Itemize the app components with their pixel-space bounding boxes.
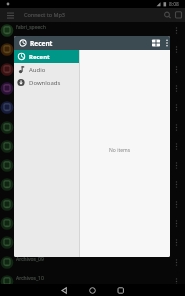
staticText: Archivos_v2	[16, 63, 44, 70]
button[interactable]: Antivirus_x	[0, 79, 185, 98]
button[interactable]: Recent	[14, 36, 170, 50]
staticText: Archivos_10	[16, 275, 44, 282]
button[interactable]: Archivos_05	[0, 175, 185, 194]
staticText: Antivirus_x	[16, 82, 42, 89]
button[interactable]: Downloads	[14, 76, 79, 89]
button[interactable]: Archivos_10	[0, 272, 185, 291]
button[interactable]: Audio	[14, 63, 79, 76]
button[interactable]: Archivos_08	[0, 233, 185, 252]
staticText: Downloads	[29, 79, 61, 87]
button[interactable]: Archivos_06	[0, 195, 185, 214]
staticText: Animated_03	[16, 43, 47, 50]
staticText: No items	[109, 147, 131, 154]
button[interactable]: Archivos_09	[0, 253, 185, 272]
button[interactable]: Connect to Mp3	[0, 8, 185, 22]
staticText: fabri_speech	[16, 24, 46, 31]
button[interactable]: Archivos_07	[0, 214, 185, 233]
staticText: Recent	[30, 39, 53, 48]
staticText: Recent	[29, 53, 50, 61]
button[interactable]: Recent	[14, 50, 79, 63]
button[interactable]: Archivos_b1	[0, 98, 185, 117]
staticText: Connect to Mp3	[24, 11, 66, 18]
button[interactable]: Animated_03	[0, 40, 185, 59]
button[interactable]: Archivos_02	[0, 118, 185, 137]
staticText: 8:08	[169, 1, 179, 8]
button[interactable]: fabri_speech	[0, 21, 185, 40]
button[interactable]: Archivos_04	[0, 156, 185, 175]
button[interactable]: Archivos_03	[0, 137, 185, 156]
button[interactable]: Archivos_v2	[0, 60, 185, 79]
staticText: Archivos_09	[16, 256, 44, 263]
staticText: Audio	[29, 66, 46, 74]
